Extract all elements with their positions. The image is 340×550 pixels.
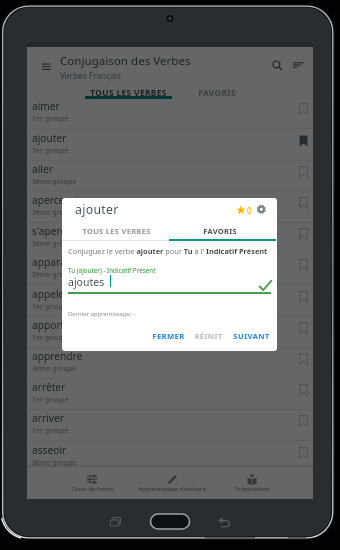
- staticText: SUIVANT: [233, 331, 270, 342]
- staticText: FAVORIS: [198, 87, 236, 98]
- staticText: Verbes Français: [60, 70, 121, 81]
- button[interactable]: FERMER: [148, 331, 188, 342]
- staticText: 1er groupe: [32, 333, 69, 343]
- button[interactable]: [141, 467, 203, 497]
- button[interactable]: SUIVANT: [230, 331, 272, 342]
- staticText: RÉINIT: [194, 331, 223, 342]
- button[interactable]: aller: [27, 161, 313, 192]
- button[interactable]: apprendre: [27, 348, 313, 379]
- staticText: arriver: [32, 411, 64, 425]
- staticText: TOUS LES VERBES: [90, 87, 167, 98]
- staticText: 3ème groupe: [32, 270, 77, 280]
- button[interactable]: aimer: [27, 98, 313, 129]
- button[interactable]: [293, 62, 304, 69]
- staticText: ajoutes: [68, 275, 105, 289]
- staticText: Choix de forme: [71, 485, 114, 493]
- staticText: aller: [32, 162, 53, 176]
- button[interactable]: apporter: [27, 317, 313, 348]
- button[interactable]: [272, 60, 284, 72]
- button[interactable]: arriver: [27, 410, 313, 441]
- staticText: FAVORIS: [203, 226, 237, 236]
- staticText: ajouter: [32, 131, 67, 145]
- staticText: apporter: [32, 318, 75, 332]
- staticText: 1er groupe: [32, 302, 69, 312]
- staticText: 3ème groupe: [32, 458, 77, 468]
- staticText: apercevoir: [32, 193, 83, 207]
- staticText: aimer: [32, 99, 60, 113]
- staticText: apparaître: [32, 255, 82, 269]
- button[interactable]: ajoutes: [68, 274, 271, 294]
- staticText: FERMER: [152, 331, 185, 342]
- button[interactable]: asseoir: [27, 442, 313, 473]
- button[interactable]: [256, 204, 267, 215]
- button[interactable]: FAVORIS: [167, 226, 273, 236]
- staticText: Prépositions: [235, 485, 270, 493]
- staticText: 0: [247, 205, 252, 216]
- staticText: 1er groupe: [32, 114, 69, 124]
- staticText: s'apercevoir: [32, 224, 90, 238]
- staticText: appeler: [32, 287, 69, 301]
- button[interactable]: appeler: [27, 286, 313, 317]
- button[interactable]: s'apercevoir: [27, 223, 313, 254]
- button[interactable]: [221, 467, 283, 497]
- staticText: Conjugaison des Verbes: [60, 53, 191, 69]
- button[interactable]: ajouter: [27, 130, 313, 161]
- staticText: TOUS LES VERBES: [82, 226, 151, 236]
- staticText: Apprentissage d'écriture: [138, 485, 206, 493]
- staticText: 1er groupe: [32, 146, 69, 156]
- staticText: 3ème groupe: [32, 364, 77, 374]
- button[interactable]: TOUS LES VERBES: [63, 226, 169, 236]
- staticText: ajouter: [75, 201, 119, 218]
- staticText: 3ème groupe: [32, 239, 77, 249]
- button[interactable]: apercevoir: [27, 192, 313, 223]
- staticText: 3ème groupe: [32, 177, 77, 187]
- button[interactable]: [236, 205, 246, 215]
- staticText: asseoir: [32, 443, 67, 457]
- staticText: Tu (ajouter) - Indicatif Présent: [68, 266, 156, 275]
- staticText: 1er groupe: [32, 426, 69, 436]
- staticText: Conjuguez le verbe ajouter pour Tu à l' …: [68, 246, 268, 256]
- button[interactable]: TOUS LES VERBES: [78, 87, 178, 98]
- button[interactable]: [42, 63, 52, 72]
- staticText: 1er groupe: [32, 395, 69, 405]
- staticText: 3ème groupe: [32, 208, 77, 218]
- button[interactable]: apparaître: [27, 254, 313, 285]
- button[interactable]: FAVORIS: [178, 87, 256, 98]
- button[interactable]: RÉINIT: [190, 331, 226, 342]
- button[interactable]: [61, 467, 122, 497]
- staticText: Dernier apprentissage: -: [68, 310, 135, 318]
- staticText: arrêter: [32, 380, 66, 394]
- staticText: apprendre: [32, 349, 83, 363]
- button[interactable]: arrêter: [27, 379, 313, 410]
